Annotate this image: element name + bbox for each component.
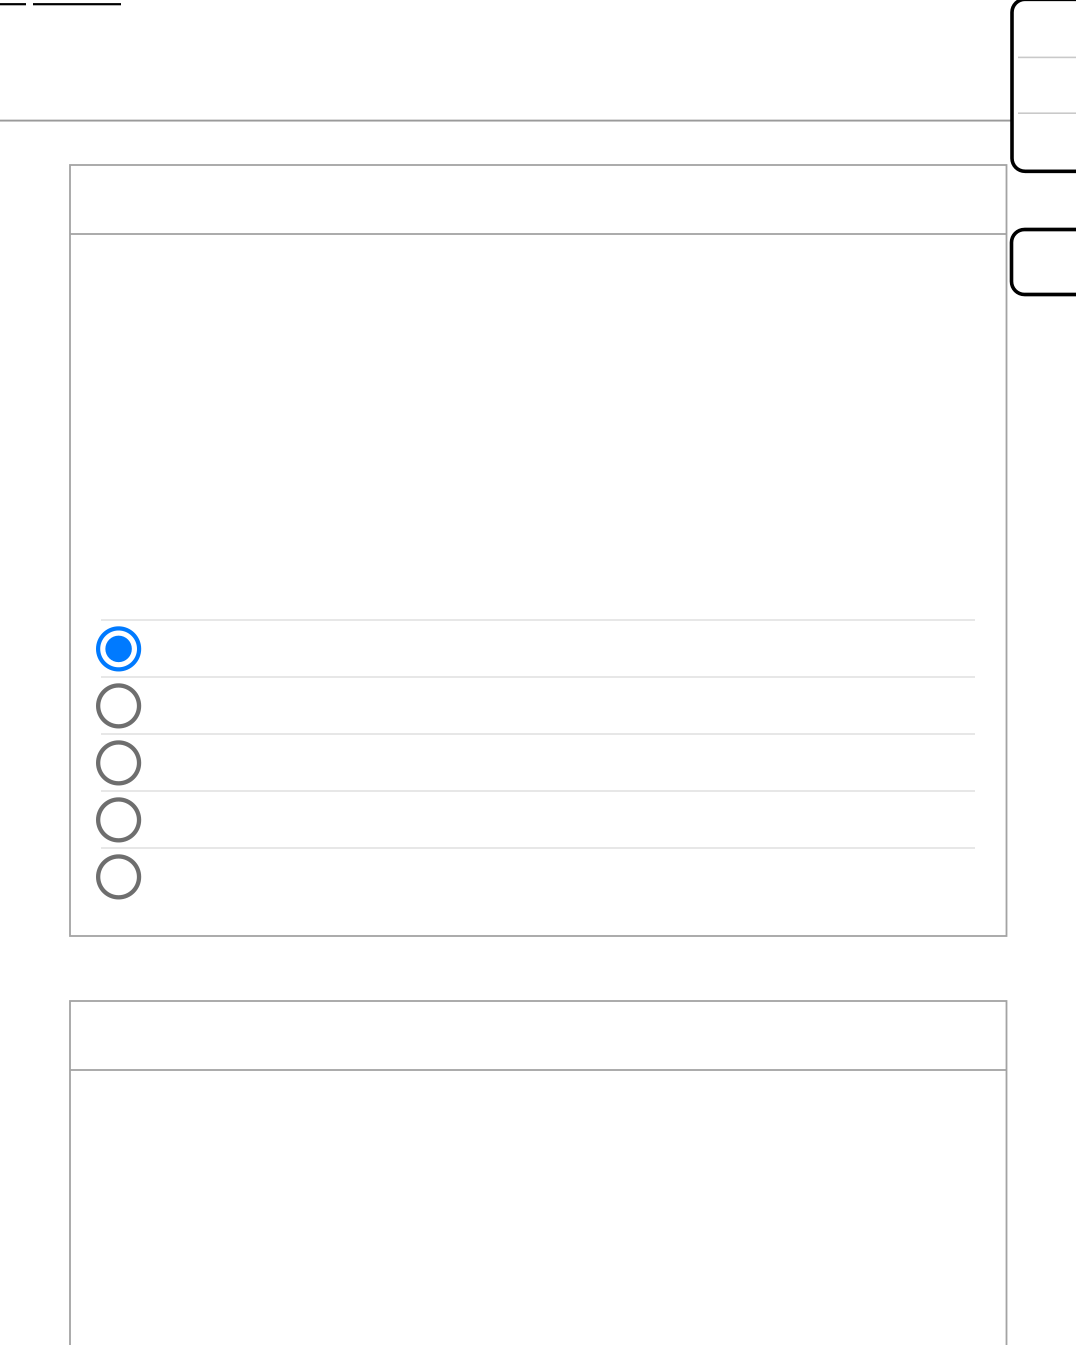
button[interactable]: Option	[70, 676, 1006, 733]
button[interactable]: Option	[70, 790, 1006, 847]
button[interactable]: Selected option	[70, 619, 1006, 676]
button[interactable]: Option	[70, 733, 1006, 790]
button[interactable]: Option	[70, 847, 1006, 904]
